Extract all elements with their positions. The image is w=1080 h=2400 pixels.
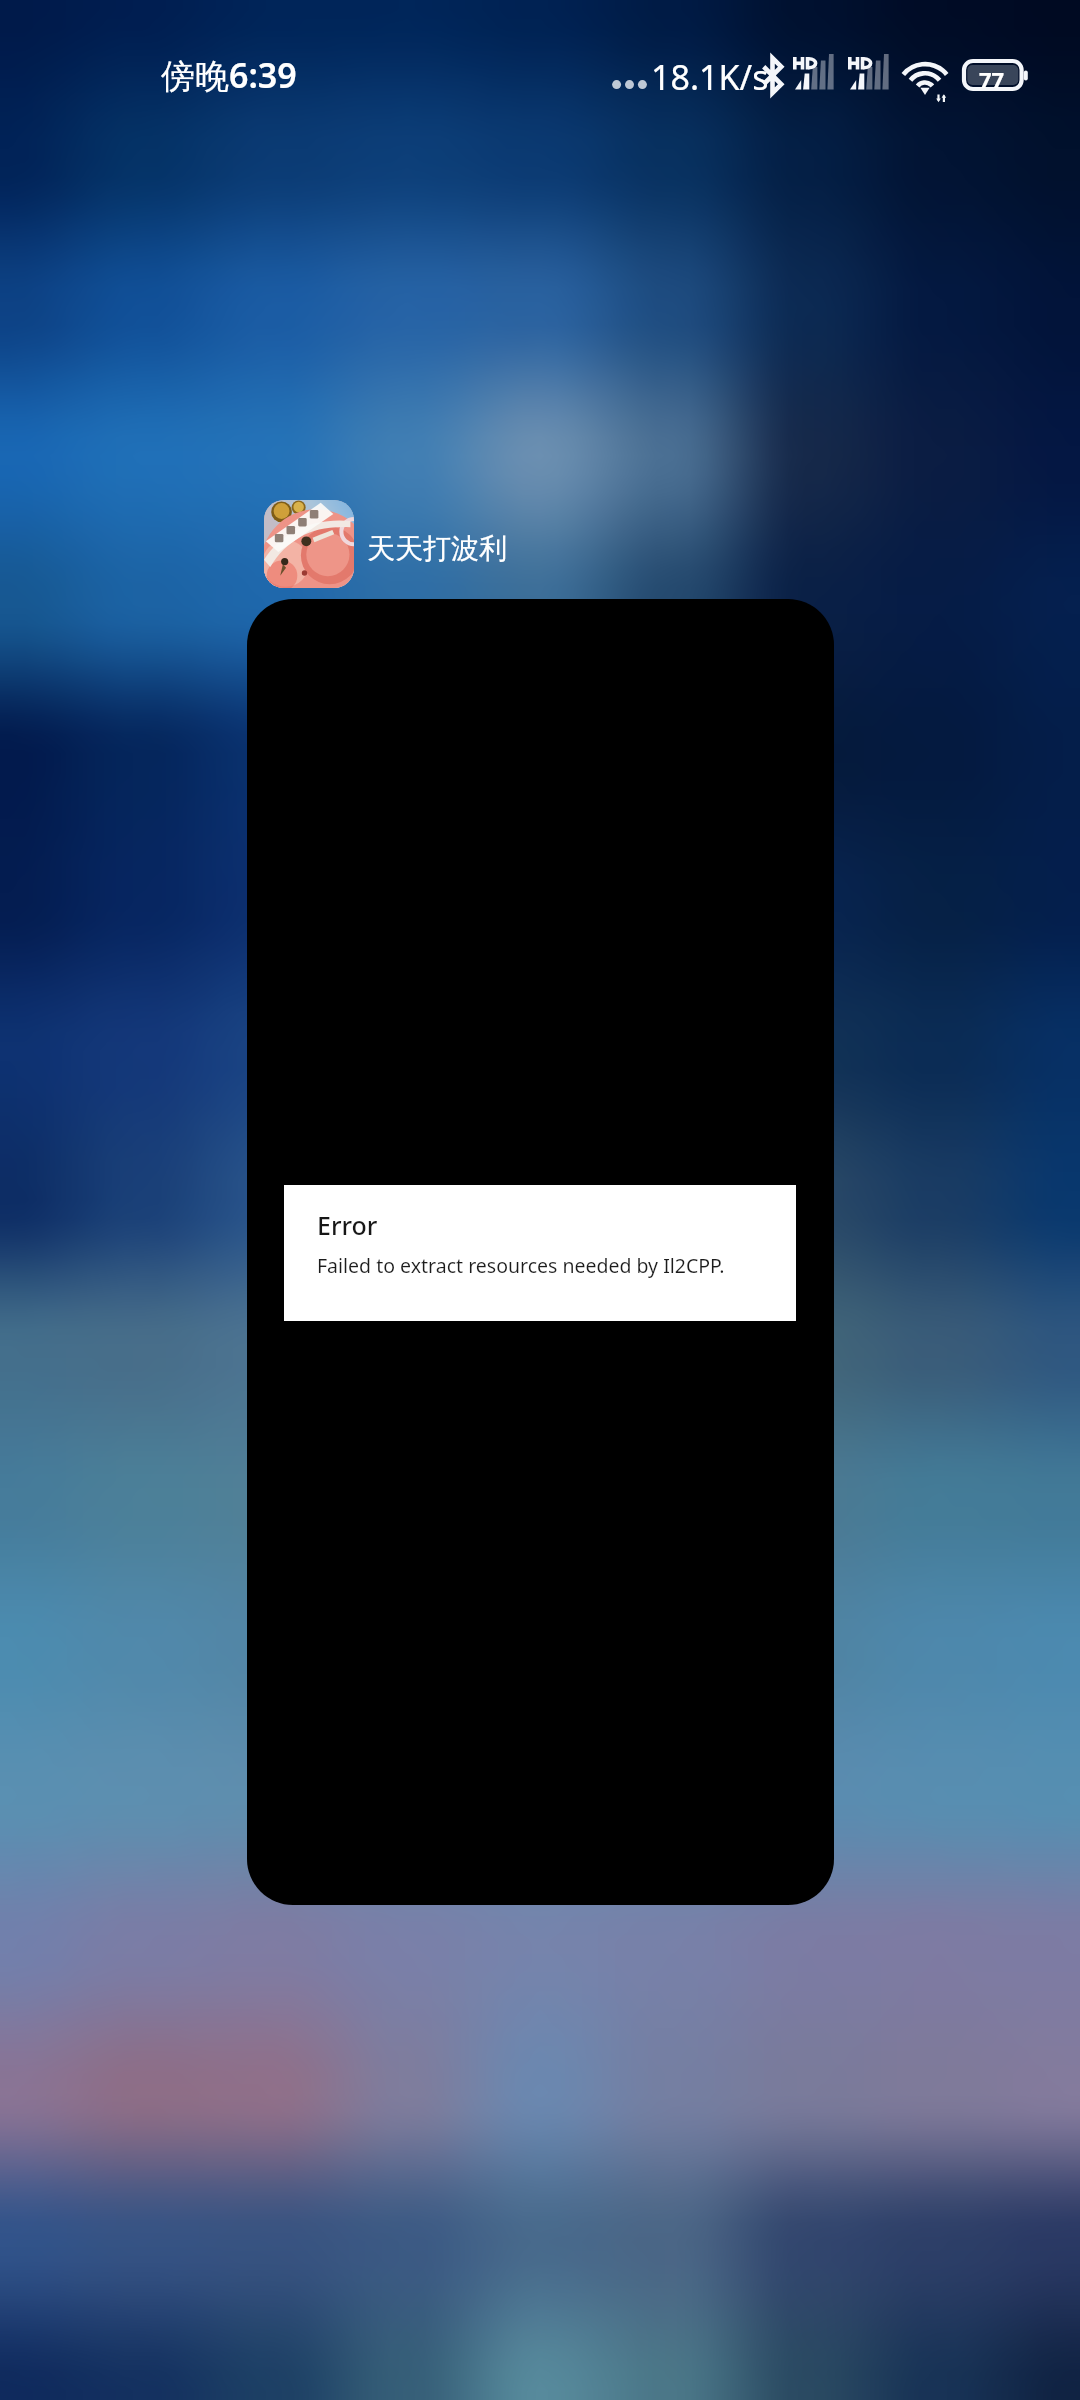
staticText: Error: [317, 1208, 378, 1242]
staticText: 傍晚6:39: [161, 52, 297, 98]
staticText: 天天打波利: [367, 531, 507, 566]
button[interactable]: 天天打波利: [264, 500, 507, 588]
button[interactable]: Error: [247, 599, 834, 1905]
staticText: 77: [979, 64, 1005, 94]
staticText: Failed to extract resources needed by Il…: [317, 1252, 725, 1279]
staticText: 18.1K/s: [651, 54, 769, 100]
